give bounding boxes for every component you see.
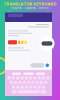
staticText: English · Spanish · French xyxy=(11,6,49,9)
staticText: TRANSLATOR KEYBOARD xyxy=(3,1,56,6)
